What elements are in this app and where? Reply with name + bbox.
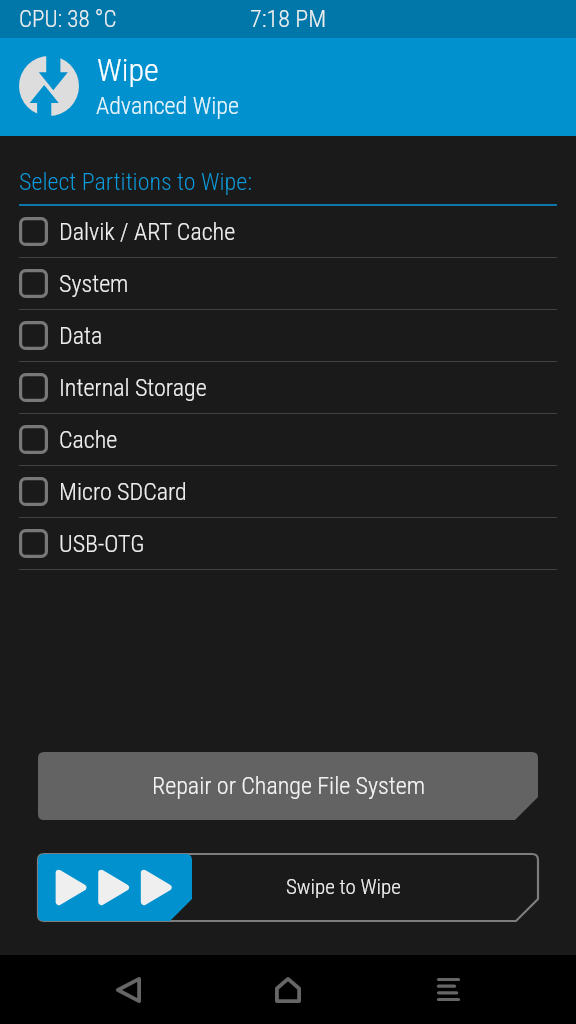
staticText: Select Partitions to Wipe: <box>19 168 253 196</box>
staticText: 7:18 PM <box>250 5 327 33</box>
staticText: Wipe <box>97 51 159 89</box>
button[interactable]: Home <box>240 955 336 1024</box>
staticText: Data <box>59 322 103 350</box>
staticText: Swipe to Wipe <box>286 875 401 900</box>
button[interactable]: USB-OTG <box>0 518 576 570</box>
staticText: CPU: 38 °C <box>19 6 117 33</box>
button[interactable]: Data <box>0 310 576 362</box>
staticText: Advanced Wipe <box>96 92 239 120</box>
staticText: Micro SDCard <box>59 478 187 506</box>
staticText: Dalvik / ART Cache <box>59 218 236 246</box>
button[interactable]: Recent apps <box>400 955 496 1024</box>
button[interactable]: Micro SDCard <box>0 466 576 518</box>
button[interactable]: Repair or Change File System <box>38 752 538 820</box>
other: TWRP logo <box>19 56 79 116</box>
staticText: System <box>59 270 129 298</box>
button[interactable]: Dalvik / ART Cache <box>0 206 576 258</box>
button[interactable]: Cache <box>0 414 576 466</box>
staticText: Cache <box>59 426 118 454</box>
button[interactable]: System <box>0 258 576 310</box>
staticText: Internal Storage <box>59 374 207 402</box>
button[interactable]: Swipe to Wipe <box>38 854 538 921</box>
staticText: Repair or Change File System <box>152 772 425 800</box>
button[interactable]: Back <box>80 955 176 1024</box>
button[interactable]: Internal Storage <box>0 362 576 414</box>
staticText: USB-OTG <box>59 530 145 558</box>
